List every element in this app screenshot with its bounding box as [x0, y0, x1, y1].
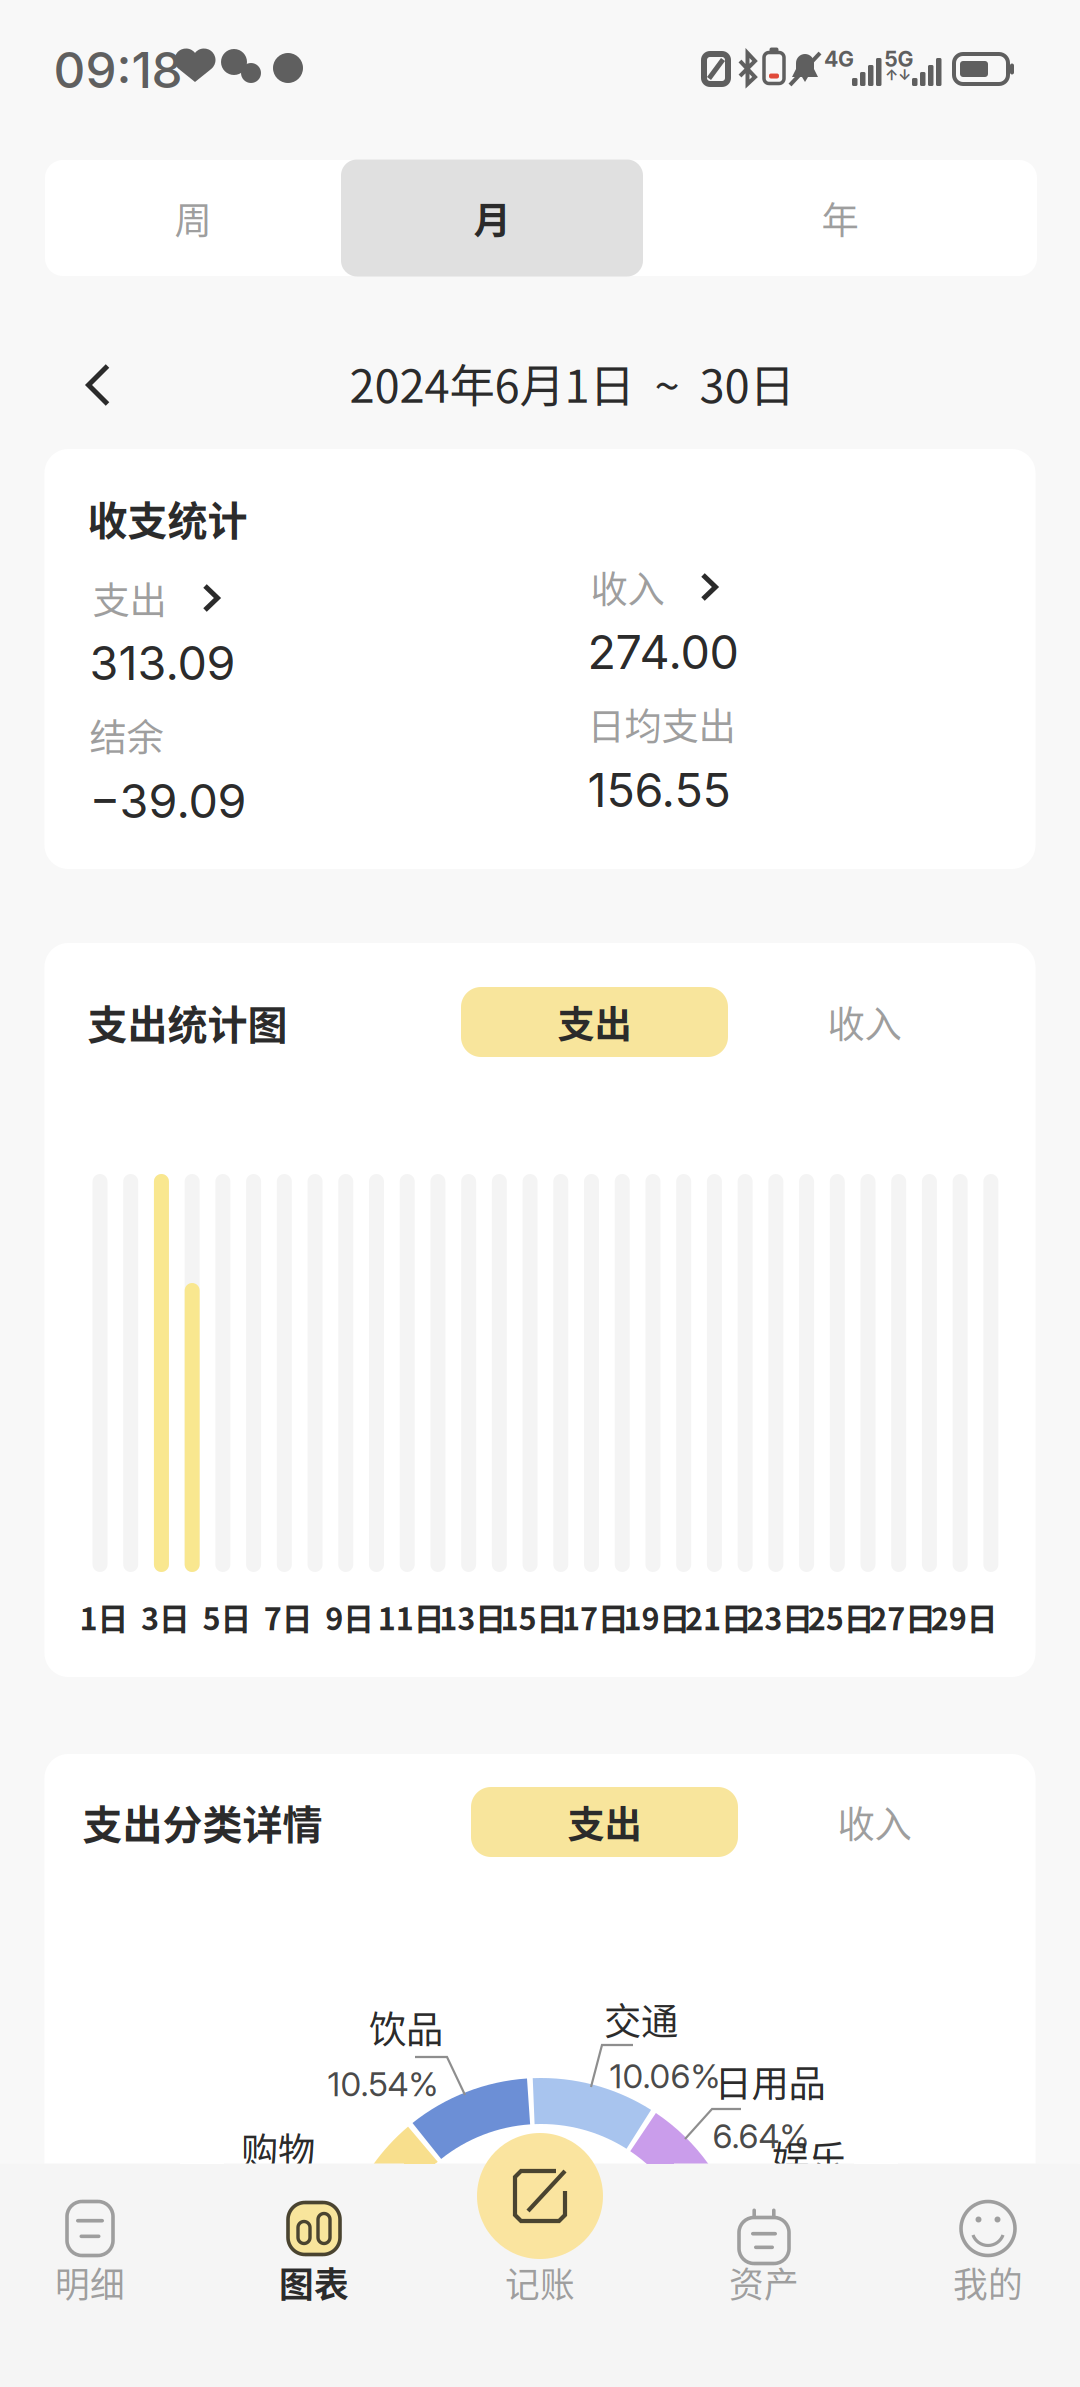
staticText: 交通 — [604, 1992, 678, 2046]
staticText: 274.00 — [587, 624, 738, 680]
staticText: 月 — [473, 191, 510, 245]
staticText: 年 — [821, 191, 858, 245]
staticText: 支出统计图 — [87, 993, 287, 1051]
staticText: 5日 — [202, 1595, 251, 1639]
staticText: 156.55 — [587, 762, 730, 818]
button[interactable]: 资产 — [674, 2163, 854, 2386]
staticText: 11日 — [378, 1595, 445, 1639]
button[interactable]: 图表 — [224, 2163, 404, 2386]
staticText: 2024年6月1日 ~ 30日 — [349, 350, 794, 416]
staticText: 饮品 — [369, 2000, 443, 2054]
staticText: 支出 — [557, 995, 631, 1049]
button[interactable]: Back — [43, 340, 153, 430]
staticText: 明细 — [55, 2257, 125, 2308]
staticText: 购物 — [241, 2122, 315, 2176]
staticText: 23日 — [746, 1595, 813, 1639]
staticText: 日均支出 — [587, 697, 735, 751]
staticText: 9日 — [325, 1595, 374, 1639]
staticText: 资产 — [729, 2257, 799, 2308]
staticText: 13日 — [439, 1595, 506, 1639]
staticText: 支出分类详情 — [82, 1793, 322, 1851]
button[interactable]: 周 — [45, 160, 341, 276]
button[interactable]: 收入 — [587, 558, 797, 616]
staticText: 313.09 — [89, 635, 235, 691]
staticText: 4G — [824, 46, 854, 72]
staticText: 5G — [884, 46, 913, 72]
staticText: 收支统计 — [87, 489, 247, 547]
staticText: 我的 — [953, 2257, 1023, 2308]
button[interactable]: 记账 — [435, 2163, 645, 2386]
button[interactable]: 收入 — [814, 1787, 934, 1857]
button[interactable]: 月 — [341, 159, 643, 276]
button[interactable]: 收入 — [804, 987, 924, 1057]
staticText: 29日 — [931, 1595, 998, 1639]
button[interactable]: 年 — [643, 160, 1037, 276]
staticText: 结余 — [89, 708, 163, 762]
staticText: 日用品 — [714, 2054, 825, 2108]
staticText: 6.64% — [712, 2116, 809, 2156]
button[interactable]: 明细 — [0, 2163, 180, 2386]
staticText: 支出 — [92, 571, 166, 625]
staticText: 图表 — [279, 2257, 349, 2308]
staticText: 19日 — [623, 1595, 690, 1639]
staticText: 21日 — [685, 1595, 752, 1639]
button[interactable]: 我的 — [898, 2163, 1078, 2386]
staticText: 记账 — [505, 2257, 575, 2308]
button[interactable]: 支出 — [471, 1787, 738, 1857]
staticText: 10.54% — [327, 2064, 438, 2104]
staticText: 收入 — [590, 560, 664, 614]
button[interactable]: 支出 — [461, 987, 728, 1057]
staticText: 1日 — [79, 1595, 128, 1639]
staticText: 收入 — [827, 995, 901, 1049]
staticText: 27日 — [869, 1595, 936, 1639]
staticText: 25日 — [808, 1595, 875, 1639]
staticText: 娱乐 — [772, 2130, 846, 2184]
staticText: 15日 — [501, 1595, 568, 1639]
staticText: 09:18 — [53, 40, 182, 100]
staticText: −39.09 — [89, 773, 246, 829]
staticText: 3日 — [141, 1595, 190, 1639]
staticText: 10.06% — [609, 2056, 720, 2096]
button[interactable]: 支出 — [89, 569, 299, 627]
staticText: 收入 — [837, 1795, 911, 1849]
staticText: 17日 — [562, 1595, 629, 1639]
staticText: ↑↓ — [885, 66, 911, 84]
staticText: 周 — [174, 191, 211, 245]
staticText: 支出 — [567, 1795, 641, 1849]
staticText: 7日 — [264, 1595, 313, 1639]
